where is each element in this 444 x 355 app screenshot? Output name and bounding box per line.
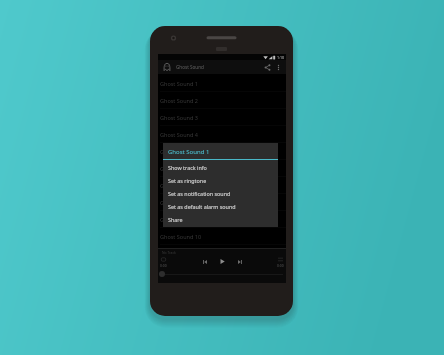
button[interactable]: Ghost Sound 6 (158, 160, 286, 177)
staticText: Share (168, 216, 183, 223)
staticText: Ghost Sound 2 (160, 97, 198, 104)
button[interactable]: Shuffle (277, 256, 284, 263)
staticText: Ghost Sound 8 (160, 199, 198, 206)
button[interactable]: Play (216, 255, 229, 268)
staticText: Ghost Sound 5 (160, 148, 198, 155)
button[interactable]: Ghost Sound 4 (158, 126, 286, 143)
button[interactable]: Ghost Sound 1 (158, 75, 286, 92)
staticText: Ghost Sound 7 (160, 182, 198, 189)
staticText: Ghost Sound 11 (160, 250, 202, 257)
staticText: Show track info (168, 164, 207, 171)
staticText: 0:00 (160, 263, 167, 268)
button[interactable]: Show track info (163, 161, 278, 174)
staticText: Ghost Sound 1 (160, 80, 198, 87)
button[interactable]: Previous (199, 256, 211, 268)
staticText: Set as ringtone (168, 177, 207, 184)
staticText: Ghost Sound 4 (160, 131, 198, 138)
staticText: Ghost Sound (176, 64, 204, 70)
button[interactable]: Ghost Sound 3 (158, 109, 286, 126)
staticText: Set as default alarm sound (168, 203, 236, 210)
button[interactable]: App icon (161, 61, 173, 73)
button[interactable]: Ghost Sound 9 (158, 211, 286, 228)
staticText: Ghost Sound 6 (160, 165, 198, 172)
button[interactable]: Ghost Sound 11 (158, 245, 286, 262)
staticText: Ghost Sound 10 (160, 233, 202, 240)
staticText: Ghost Sound 3 (160, 114, 198, 121)
button[interactable]: More options (273, 62, 283, 72)
button[interactable]: Share (163, 213, 278, 226)
button[interactable]: Set as ringtone (163, 174, 278, 187)
staticText: Set as notification sound (168, 190, 231, 197)
button[interactable]: Ghost Sound 7 (158, 177, 286, 194)
button[interactable]: Set as default alarm sound (163, 200, 278, 213)
staticText: Ghost Sound 9 (160, 216, 198, 223)
button[interactable]: Repeat (160, 256, 167, 263)
button[interactable]: Ghost Sound 2 (158, 92, 286, 109)
button[interactable]: Next (234, 256, 246, 268)
button[interactable]: Seek (159, 271, 165, 277)
staticText: 1:10 (277, 55, 285, 60)
staticText: Ghost Sound 1 (168, 148, 210, 156)
button[interactable]: Ghost Sound 5 (158, 143, 286, 160)
staticText: No Track (162, 250, 176, 255)
staticText: 0:00 (277, 263, 284, 268)
button[interactable]: Set as notification sound (163, 187, 278, 200)
button[interactable]: Ghost Sound 8 (158, 194, 286, 211)
button[interactable]: Ghost Sound 10 (158, 228, 286, 245)
button[interactable]: Share (261, 61, 273, 73)
